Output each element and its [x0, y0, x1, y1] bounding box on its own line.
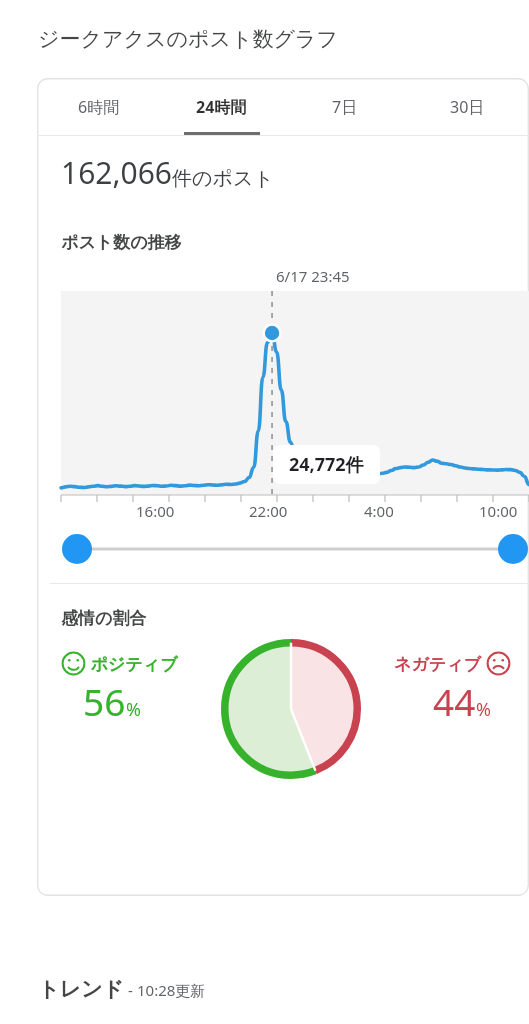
staticText: 10:28更新: [137, 980, 206, 1000]
staticText: ジークアクスのポスト数グラフ: [38, 26, 338, 52]
staticText: 162,066: [61, 152, 172, 193]
staticText: %: [126, 697, 141, 722]
staticText: 感情の割合: [61, 608, 147, 629]
staticText: 24,772件: [289, 452, 364, 477]
staticText: 56: [83, 676, 126, 726]
button[interactable]: 24時間: [160, 78, 283, 135]
staticText: 16:00: [136, 501, 175, 521]
staticText: ポスト数の推移: [61, 232, 182, 253]
staticText: 24時間: [196, 96, 247, 118]
button[interactable]: 30日: [406, 78, 529, 135]
staticText: 件のポスト: [172, 166, 274, 191]
staticText: 30日: [450, 96, 485, 118]
button[interactable]: 6時間: [37, 78, 160, 135]
staticText: 7日: [332, 96, 358, 118]
button[interactable]: 時間範囲スライダー: [61, 523, 529, 583]
staticText: 6時間: [78, 96, 120, 118]
staticText: 6/17 23:45: [276, 266, 350, 286]
staticText: 4:00: [364, 501, 394, 521]
staticText: トレンド: [38, 976, 124, 1002]
staticText: %: [476, 697, 491, 722]
button[interactable]: 7日: [283, 78, 406, 135]
staticText: ネガティブ: [394, 652, 486, 675]
button[interactable]: 24,772件: [289, 452, 364, 477]
staticText: -: [124, 980, 137, 1000]
staticText: 22:00: [249, 501, 288, 521]
staticText: 44: [433, 676, 476, 726]
staticText: 10:00: [479, 501, 518, 521]
staticText: ポジティブ: [86, 652, 178, 675]
